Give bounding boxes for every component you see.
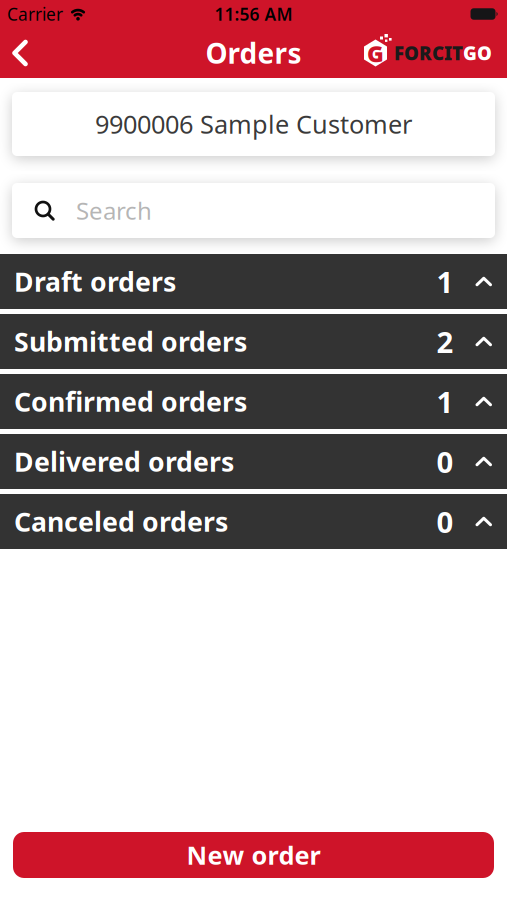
button[interactable]: 9900006 Sample Customer — [12, 92, 495, 156]
button[interactable]: New order — [13, 832, 494, 878]
button[interactable]: Confirmed orders — [0, 374, 507, 429]
staticText: 1 — [436, 262, 453, 301]
staticText: Canceled orders — [14, 504, 228, 539]
button[interactable]: Search — [12, 183, 495, 238]
staticText: Search — [76, 195, 152, 226]
staticText: 0 — [436, 442, 453, 481]
staticText: 1 — [436, 382, 453, 421]
staticText: 9900006 Sample Customer — [95, 107, 412, 141]
staticText: GO — [463, 41, 492, 65]
button[interactable]: Back — [0, 28, 29, 78]
staticText: 0 — [436, 502, 453, 541]
button[interactable]: Canceled orders — [0, 494, 507, 549]
staticText: New order — [186, 838, 320, 872]
staticText: Draft orders — [14, 264, 176, 299]
staticText: 2 — [436, 322, 453, 361]
button[interactable]: Draft orders — [0, 254, 507, 309]
button[interactable]: Delivered orders — [0, 434, 507, 489]
staticText: Orders — [205, 34, 301, 72]
staticText: FORCIT — [394, 41, 463, 65]
staticText: Submitted orders — [14, 324, 247, 359]
staticText: Confirmed orders — [14, 384, 247, 419]
button[interactable]: Submitted orders — [0, 314, 507, 369]
staticText: Carrier — [7, 2, 63, 25]
staticText: G — [367, 38, 384, 68]
staticText: 11:56 AM — [214, 2, 292, 25]
staticText: Delivered orders — [14, 444, 234, 479]
